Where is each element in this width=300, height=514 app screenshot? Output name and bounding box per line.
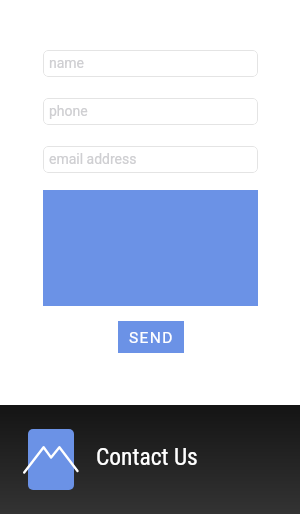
staticText: name (49, 55, 85, 71)
staticText: phone (49, 103, 88, 119)
staticText: SEND (129, 329, 174, 347)
button[interactable]: Contact image (24, 429, 78, 490)
button[interactable]: phone (43, 98, 258, 125)
button[interactable]: SEND (118, 321, 184, 353)
staticText: email address (49, 151, 137, 167)
staticText: Contact Us (96, 443, 198, 471)
button[interactable]: name (43, 50, 258, 77)
button[interactable]: email address (43, 146, 258, 173)
